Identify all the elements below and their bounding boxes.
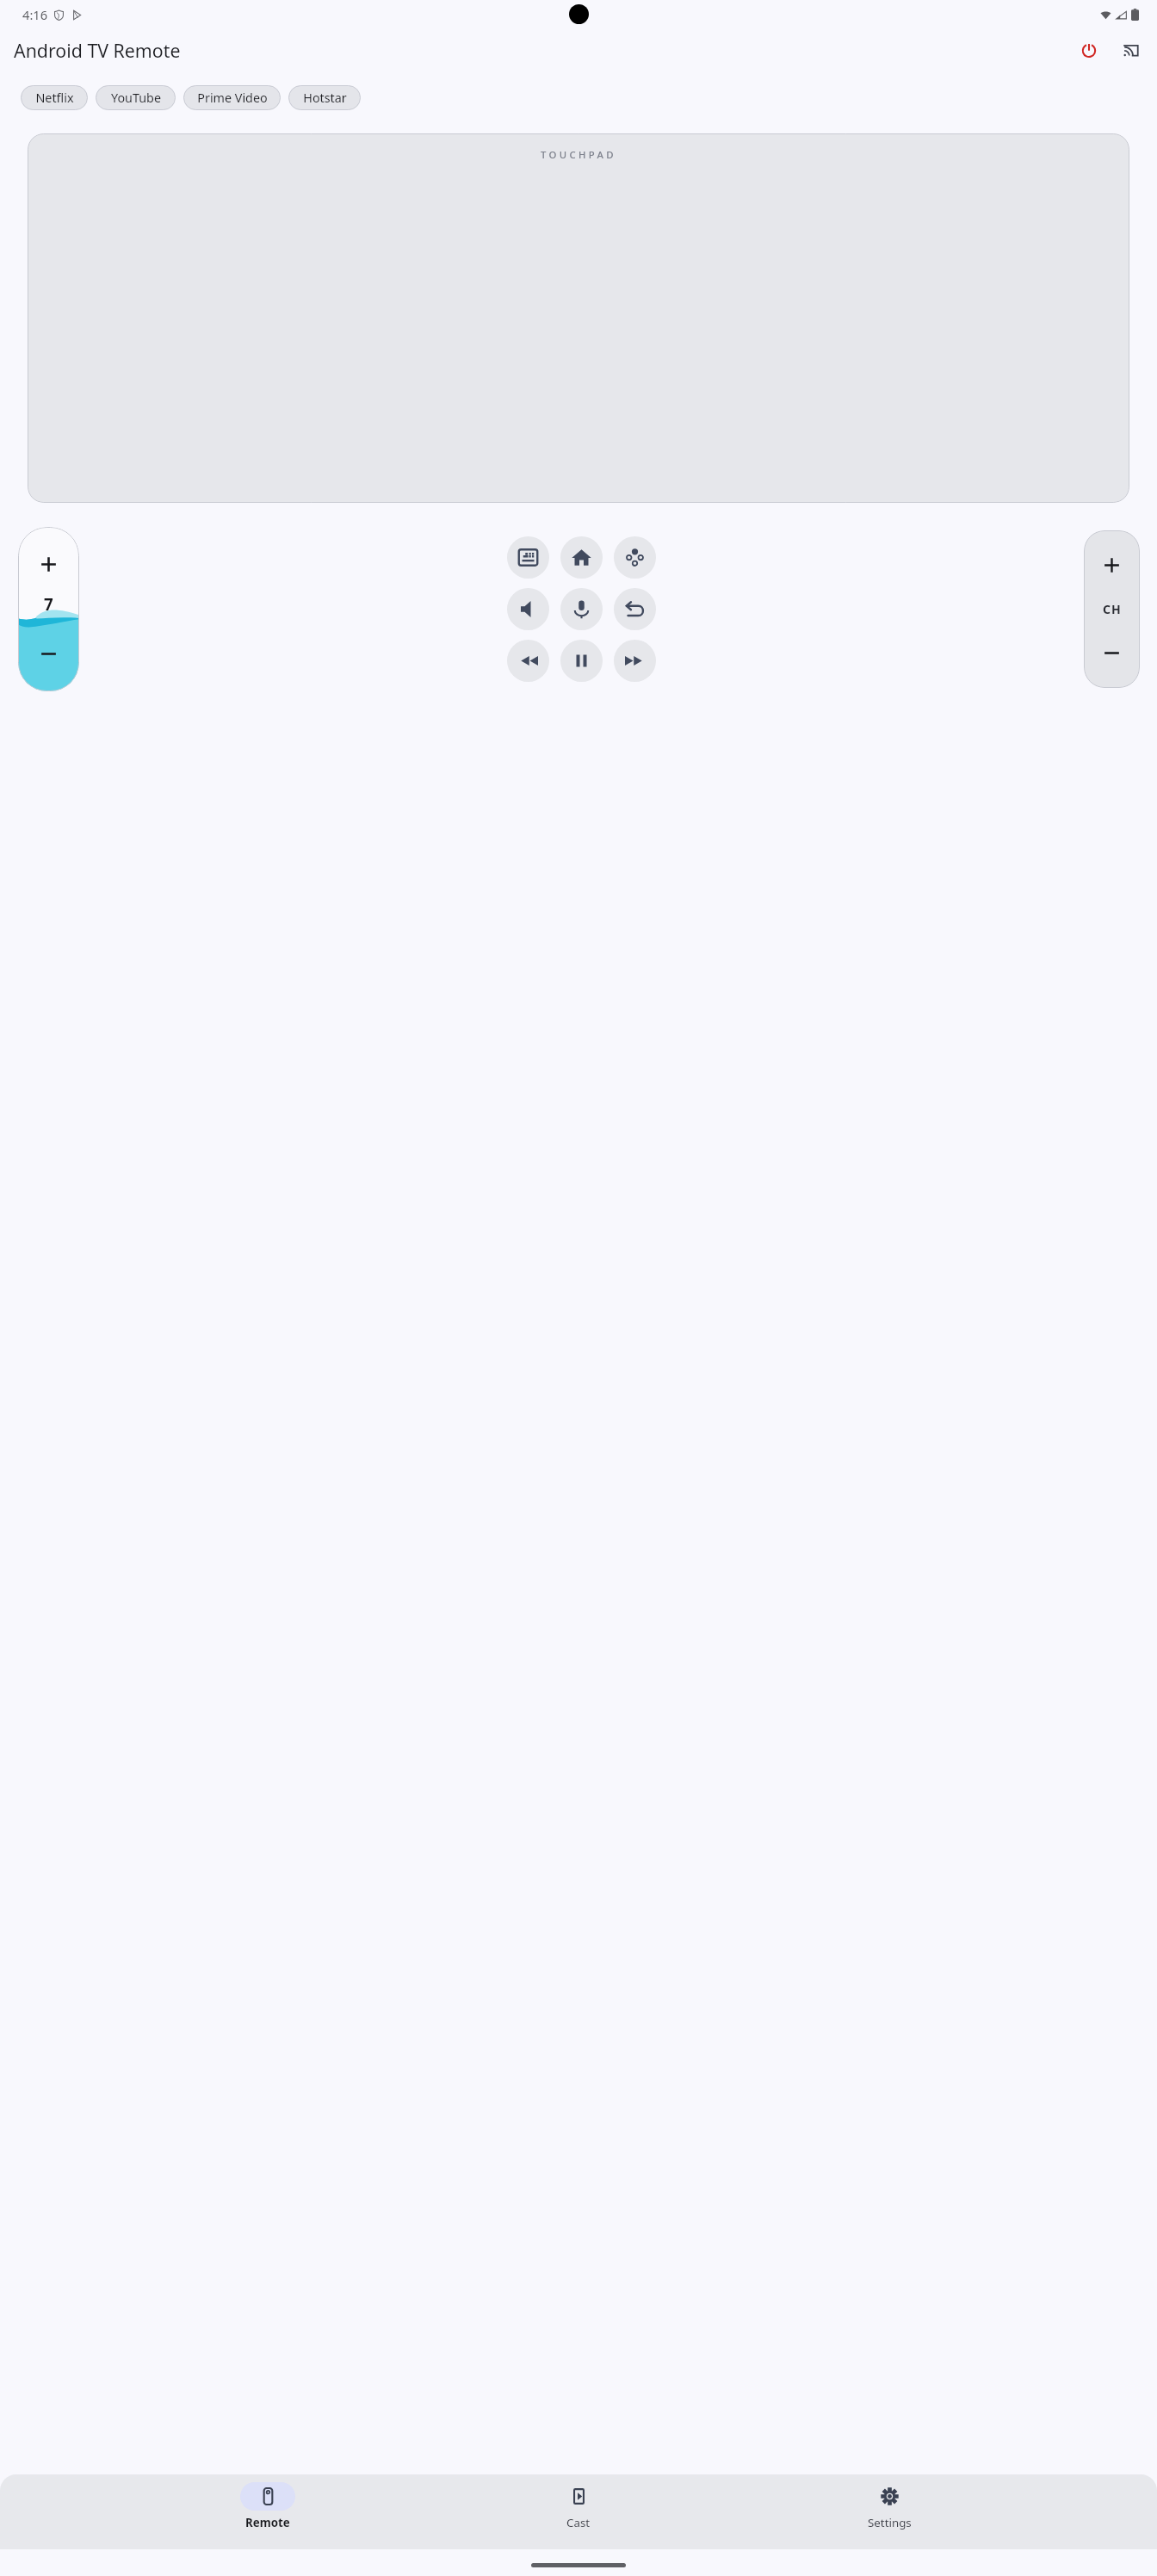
button[interactable]: Keyboard: [507, 536, 549, 579]
button[interactable]: Volume down: [35, 641, 62, 667]
button[interactable]: Power: [1075, 36, 1103, 64]
button[interactable]: Volume up: [35, 551, 62, 578]
staticText: Cast: [566, 2515, 591, 2530]
staticText: Android TV Remote: [14, 38, 181, 63]
button[interactable]: Rewind: [507, 640, 549, 682]
button[interactable]: Channel down: [1098, 640, 1125, 666]
button[interactable]: Cast: [535, 2482, 622, 2530]
staticText: 4:16: [22, 6, 48, 23]
button[interactable]: Channel up: [1098, 552, 1125, 579]
button[interactable]: Pause: [560, 640, 603, 682]
staticText: Remote: [245, 2515, 290, 2530]
staticText: Prime Video: [197, 90, 268, 107]
button[interactable]: Back: [614, 588, 656, 630]
staticText: YouTube: [111, 90, 161, 107]
button[interactable]: Prime Video: [183, 85, 281, 110]
button[interactable]: Voice search: [560, 588, 603, 630]
button[interactable]: Hotstar: [288, 85, 361, 110]
button[interactable]: Mute: [507, 588, 549, 630]
button[interactable]: Fast forward: [614, 640, 656, 682]
button[interactable]: Home: [560, 536, 603, 579]
button[interactable]: Directional pad: [614, 536, 656, 579]
staticText: TOUCHPAD: [541, 148, 616, 161]
button[interactable]: YouTube: [96, 85, 176, 110]
button[interactable]: Remote: [225, 2482, 311, 2530]
staticText: Hotstar: [303, 90, 347, 107]
button[interactable]: Settings: [846, 2482, 932, 2530]
staticText: CH: [1103, 601, 1122, 617]
button[interactable]: Cast: [1117, 36, 1145, 64]
button[interactable]: Volume: [18, 527, 79, 691]
button[interactable]: Netflix: [21, 85, 88, 110]
staticText: Settings: [868, 2515, 912, 2530]
staticText: Netflix: [35, 90, 74, 107]
staticText: 7: [44, 593, 53, 615]
button[interactable]: Channel: [1084, 530, 1140, 688]
